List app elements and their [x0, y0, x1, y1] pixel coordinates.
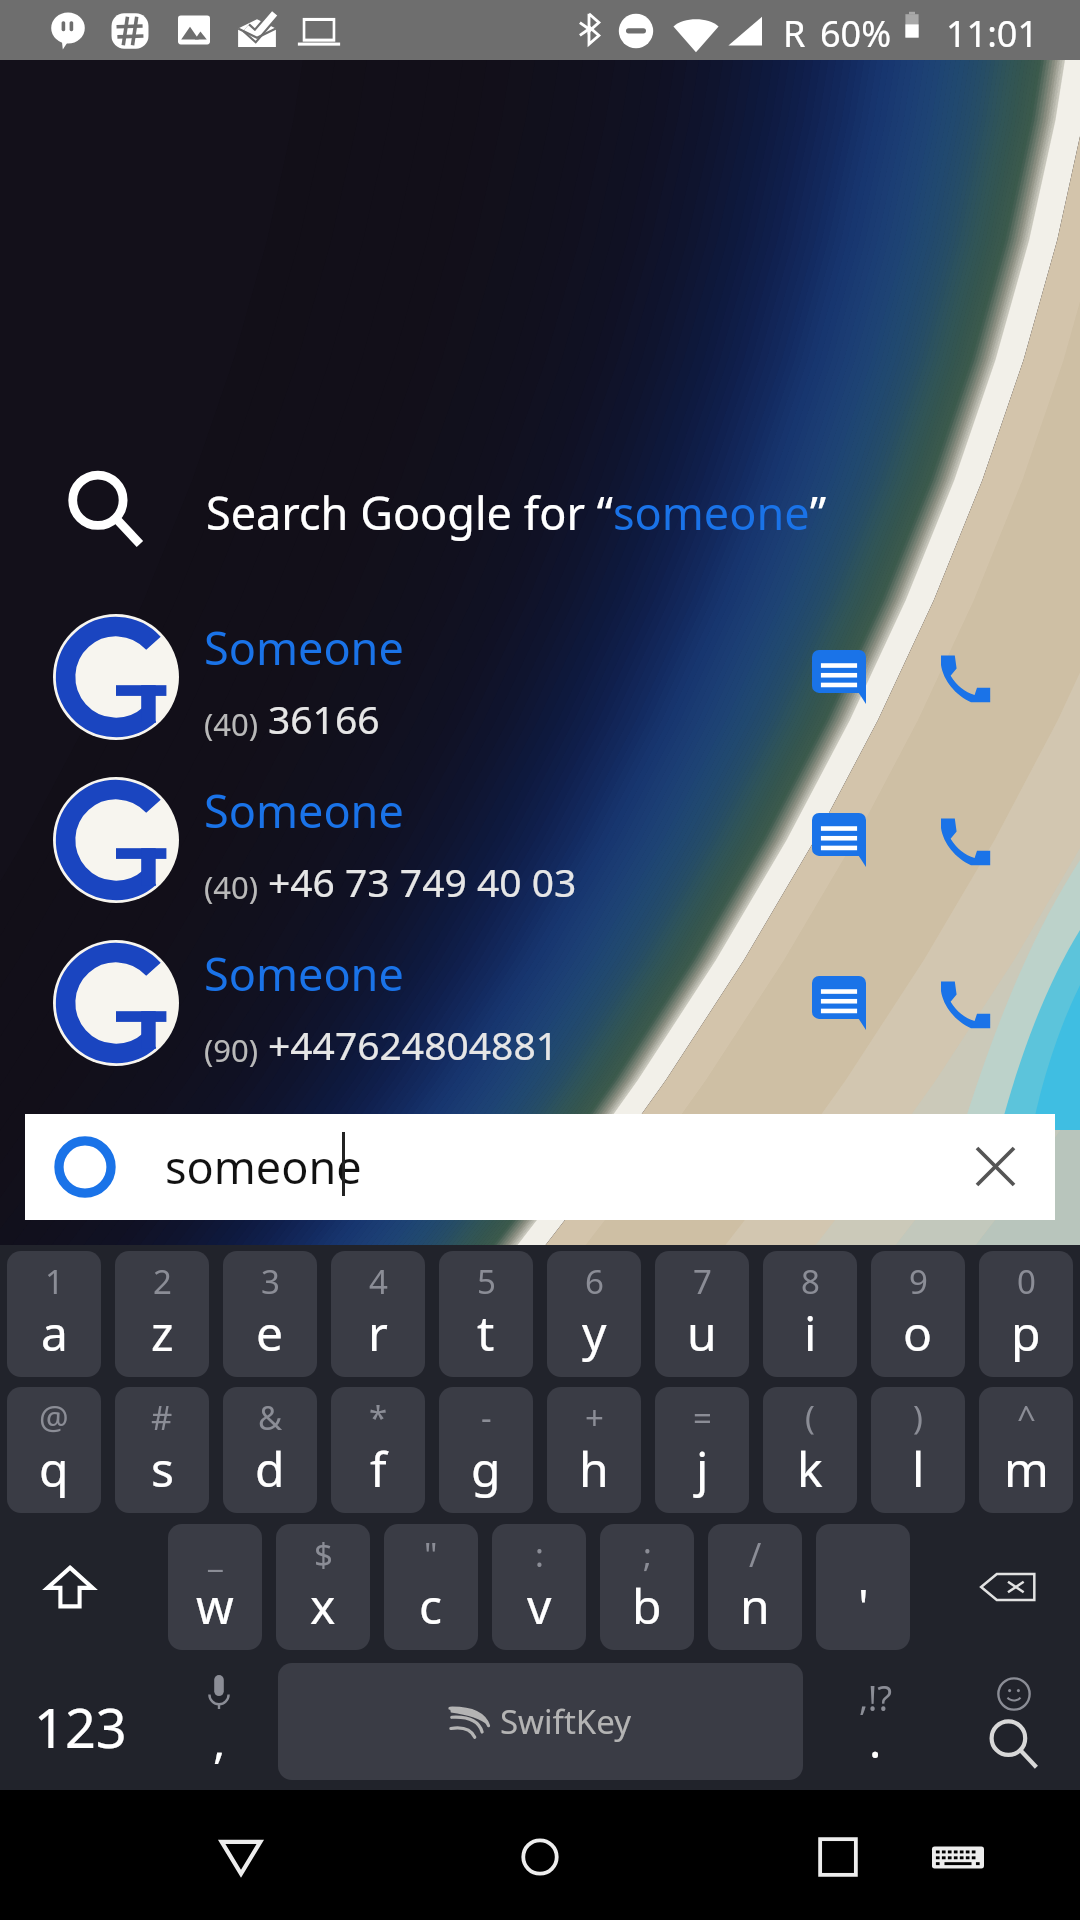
staticText: d — [255, 1436, 285, 1501]
staticText: s — [151, 1436, 174, 1501]
button[interactable]: Call — [920, 958, 1010, 1048]
staticText: Search Google for “ — [206, 482, 613, 543]
staticText: p — [1011, 1300, 1041, 1365]
button[interactable]: = — [655, 1387, 749, 1513]
button[interactable]: Someone — [0, 918, 1080, 1081]
button[interactable]: + — [547, 1387, 641, 1513]
button[interactable]: SwiftKey — [278, 1663, 803, 1780]
button[interactable]: / — [708, 1524, 802, 1650]
staticText: - — [481, 1395, 492, 1440]
button[interactable]: Message — [794, 632, 884, 722]
staticText: * — [369, 1395, 388, 1440]
staticText: ^ — [1017, 1395, 1036, 1440]
staticText: m — [1004, 1436, 1049, 1501]
staticText: @ — [39, 1395, 69, 1440]
staticText: y — [582, 1300, 607, 1365]
staticText: g — [471, 1436, 501, 1501]
button[interactable]: 9 — [871, 1251, 965, 1377]
staticText: & — [258, 1395, 283, 1440]
button[interactable]: 7 — [655, 1251, 749, 1377]
staticText: " — [424, 1532, 438, 1577]
button[interactable]: # — [115, 1387, 209, 1513]
button[interactable]: Recents — [793, 1812, 883, 1902]
staticText: 5 — [477, 1259, 496, 1304]
staticText: _ — [208, 1532, 223, 1577]
staticText: +447624804881 — [268, 1018, 559, 1071]
staticText: R — [783, 9, 806, 58]
staticText: j — [696, 1436, 709, 1501]
staticText: o — [903, 1300, 933, 1365]
staticText: f — [370, 1436, 387, 1501]
button[interactable]: 0 — [979, 1251, 1073, 1377]
button[interactable]: 6 — [547, 1251, 641, 1377]
button[interactable]: & — [223, 1387, 317, 1513]
staticText: (40) — [204, 703, 259, 745]
staticText: v — [527, 1573, 552, 1638]
button[interactable]: Clear — [959, 1130, 1031, 1202]
button[interactable]: Call — [920, 632, 1010, 722]
button[interactable]: _ — [168, 1524, 262, 1650]
staticText: l — [912, 1436, 925, 1501]
button[interactable]: 8 — [763, 1251, 857, 1377]
staticText: q — [39, 1436, 69, 1501]
staticText: a — [41, 1300, 68, 1365]
button[interactable]: ( — [763, 1387, 857, 1513]
button[interactable]: $ — [276, 1524, 370, 1650]
staticText: someone — [613, 482, 810, 543]
button[interactable]: : — [492, 1524, 586, 1650]
staticText: (90) — [204, 1029, 259, 1071]
button[interactable]: Keyboard — [913, 1812, 1003, 1902]
button[interactable]: Search Google for “ — [0, 452, 1080, 572]
staticText: ' — [858, 1573, 869, 1638]
staticText: 0 — [1017, 1259, 1036, 1304]
staticText: n — [740, 1573, 770, 1638]
button[interactable]: @ — [7, 1387, 101, 1513]
staticText: ; — [643, 1532, 652, 1577]
button[interactable]: Shift — [0, 1524, 140, 1650]
button[interactable]: Someone — [0, 592, 1080, 755]
button[interactable]: " — [384, 1524, 478, 1650]
button[interactable]: Message — [794, 795, 884, 885]
staticText: 4 — [369, 1259, 388, 1304]
staticText: ,!? — [859, 1675, 893, 1721]
button[interactable]: Home — [495, 1812, 585, 1902]
button[interactable]: someone — [25, 1114, 1055, 1220]
staticText: 6 — [585, 1259, 604, 1304]
staticText: 1 — [45, 1259, 64, 1304]
button[interactable]: 4 — [331, 1251, 425, 1377]
staticText: someone — [165, 1136, 362, 1197]
button[interactable]: Back — [196, 1812, 286, 1902]
button[interactable]: Backspace — [935, 1524, 1080, 1650]
button[interactable]: Message — [794, 958, 884, 1048]
button[interactable]: Search — [948, 1663, 1080, 1790]
staticText: 9 — [909, 1259, 928, 1304]
button[interactable]: ^ — [979, 1387, 1073, 1513]
button[interactable]: 123 — [0, 1663, 160, 1790]
button[interactable]: Call — [920, 795, 1010, 885]
staticText: b — [632, 1573, 662, 1638]
button[interactable]: ,!? — [803, 1663, 948, 1790]
button[interactable]: ) — [871, 1387, 965, 1513]
staticText: Someone — [204, 943, 404, 1004]
staticText: +46 73 749 40 03 — [268, 855, 577, 908]
button[interactable]: Someone — [0, 755, 1080, 918]
button[interactable]: 1 — [7, 1251, 101, 1377]
button[interactable]: ; — [600, 1524, 694, 1650]
button[interactable]: * — [331, 1387, 425, 1513]
staticText: # — [151, 1395, 173, 1440]
button[interactable]: , — [160, 1663, 278, 1790]
staticText: = — [693, 1395, 712, 1440]
staticText: 36166 — [268, 692, 380, 745]
staticText: ) — [913, 1395, 923, 1440]
button[interactable]: 5 — [439, 1251, 533, 1377]
staticText: 2 — [153, 1259, 172, 1304]
staticText: t — [477, 1300, 495, 1365]
button[interactable]: ' — [816, 1524, 910, 1650]
button[interactable]: - — [439, 1387, 533, 1513]
staticText: k — [797, 1436, 823, 1501]
staticText: 60% — [820, 9, 892, 58]
staticText: 7 — [693, 1259, 712, 1304]
staticText: 3 — [261, 1259, 280, 1304]
button[interactable]: 3 — [223, 1251, 317, 1377]
button[interactable]: 2 — [115, 1251, 209, 1377]
